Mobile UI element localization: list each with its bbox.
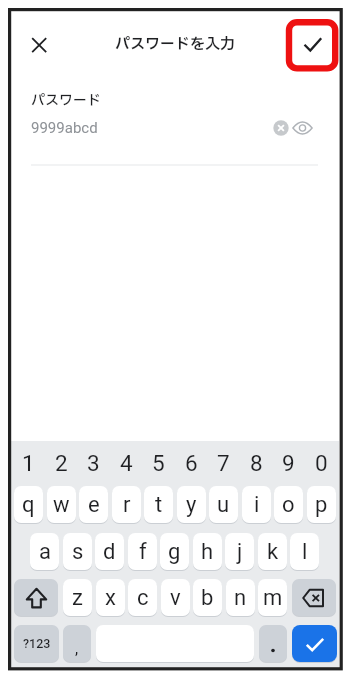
staticText: m: [263, 585, 283, 611]
staticText: パスワードを入力: [115, 33, 236, 55]
staticText: n: [234, 585, 247, 611]
button[interactable]: 9: [274, 449, 303, 477]
button[interactable]: e: [79, 486, 108, 523]
staticText: s: [72, 539, 84, 565]
staticText: ?123: [23, 636, 51, 651]
staticText: 4: [120, 450, 133, 476]
staticText: g: [168, 539, 181, 565]
staticText: 9999abcd: [31, 119, 98, 137]
button[interactable]: v: [161, 579, 190, 616]
button[interactable]: b: [193, 579, 222, 616]
button[interactable]: t: [144, 486, 173, 523]
button[interactable]: [272, 119, 290, 137]
staticText: u: [217, 492, 230, 518]
staticText: パスワード: [31, 90, 101, 111]
button[interactable]: [292, 579, 336, 616]
button[interactable]: 4: [112, 449, 141, 477]
staticText: h: [201, 539, 214, 565]
button[interactable]: 6: [177, 449, 206, 477]
button[interactable]: [259, 625, 287, 662]
button[interactable]: i: [242, 486, 271, 523]
staticText: w: [53, 492, 70, 518]
staticText: 9: [282, 450, 295, 476]
button[interactable]: x: [96, 579, 125, 616]
button[interactable]: [297, 29, 327, 59]
button[interactable]: 2: [47, 449, 76, 477]
button[interactable]: 5: [144, 449, 173, 477]
staticText: r: [123, 492, 131, 518]
button[interactable]: y: [177, 486, 206, 523]
staticText: z: [72, 585, 83, 611]
button[interactable]: [25, 31, 53, 59]
button[interactable]: [14, 579, 58, 616]
staticText: e: [88, 492, 100, 518]
button[interactable]: f: [128, 533, 157, 570]
button[interactable]: o: [274, 486, 303, 523]
staticText: l: [302, 539, 308, 565]
staticText: c: [137, 585, 149, 611]
staticText: d: [103, 539, 116, 565]
staticText: a: [39, 539, 51, 565]
staticText: j: [237, 539, 243, 565]
button[interactable]: l: [290, 533, 319, 570]
button[interactable]: p: [307, 486, 336, 523]
button[interactable]: 3: [79, 449, 108, 477]
button[interactable]: n: [226, 579, 255, 616]
staticText: 7: [217, 450, 230, 476]
staticText: 1: [22, 450, 35, 476]
button[interactable]: 0: [307, 449, 336, 477]
staticText: k: [267, 539, 279, 565]
button[interactable]: c: [128, 579, 157, 616]
button[interactable]: s: [63, 533, 92, 570]
staticText: p: [315, 492, 328, 518]
staticText: f: [139, 539, 147, 565]
button[interactable]: q: [14, 486, 43, 523]
button[interactable]: 8: [242, 449, 271, 477]
staticText: 3: [87, 450, 100, 476]
button[interactable]: u: [209, 486, 238, 523]
staticText: 6: [185, 450, 198, 476]
button[interactable]: w: [47, 486, 76, 523]
staticText: t: [155, 492, 163, 518]
staticText: x: [105, 585, 116, 611]
button[interactable]: 1: [14, 449, 43, 477]
button[interactable]: m: [258, 579, 287, 616]
button[interactable]: h: [193, 533, 222, 570]
staticText: 8: [250, 450, 263, 476]
button[interactable]: ?123: [14, 625, 59, 662]
staticText: ,: [75, 639, 79, 658]
button[interactable]: 7: [209, 449, 238, 477]
button[interactable]: [292, 625, 337, 662]
button[interactable]: d: [95, 533, 124, 570]
button[interactable]: ,: [63, 625, 91, 662]
staticText: 5: [152, 450, 165, 476]
button[interactable]: k: [258, 533, 287, 570]
staticText: q: [22, 492, 35, 518]
staticText: v: [170, 585, 181, 611]
button[interactable]: r: [112, 486, 141, 523]
staticText: 0: [315, 450, 328, 476]
button[interactable]: j: [225, 533, 254, 570]
button[interactable]: a: [30, 533, 59, 570]
button[interactable]: [292, 119, 313, 137]
staticText: y: [186, 492, 197, 518]
button[interactable]: g: [160, 533, 189, 570]
staticText: o: [282, 492, 295, 518]
staticText: b: [201, 585, 214, 611]
button[interactable]: z: [63, 579, 92, 616]
staticText: i: [254, 492, 260, 518]
staticText: 2: [55, 450, 68, 476]
